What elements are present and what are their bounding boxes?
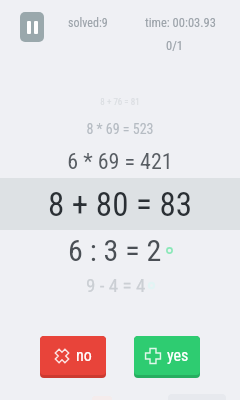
- staticText: solved:9: [68, 16, 108, 30]
- staticText: time: 00:03.93: [145, 15, 216, 30]
- staticText: no: [76, 346, 92, 365]
- staticText: 8 + 76 = 81: [100, 97, 140, 108]
- button[interactable]: Pause: [20, 12, 44, 42]
- staticText: 8 * 69 = 523: [86, 121, 154, 137]
- staticText: 6 : 3 = 2: [68, 233, 162, 268]
- staticText: 6 * 69 = 421: [67, 149, 173, 175]
- staticText: yes: [167, 346, 189, 365]
- staticText: 8 + 80 = 83: [48, 185, 192, 224]
- staticText: 0/1: [166, 38, 183, 53]
- staticText: 9 - 4 = 4: [86, 274, 146, 296]
- button[interactable]: yes: [134, 336, 200, 378]
- button[interactable]: no: [40, 336, 106, 378]
